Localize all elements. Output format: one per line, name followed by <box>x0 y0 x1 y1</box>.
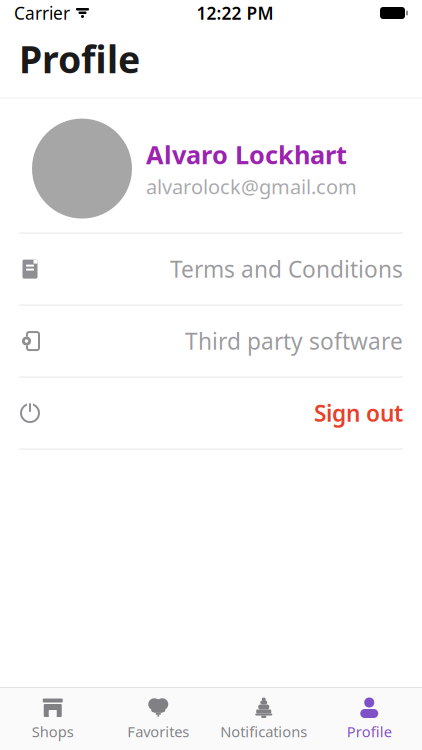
button[interactable]: Third party software <box>0 306 422 378</box>
staticText: alvarolock@gmail.com <box>146 173 357 200</box>
staticText: Notifications <box>220 722 307 741</box>
staticText: Shops <box>32 722 74 741</box>
button[interactable]: Profile <box>316 688 422 750</box>
button[interactable]: Shops <box>0 688 105 750</box>
staticText: Sign out <box>314 398 403 428</box>
staticText: Terms and Conditions <box>170 254 403 284</box>
staticText: Profile <box>19 34 140 84</box>
button[interactable]: Favorites <box>105 688 211 750</box>
staticText: Profile <box>347 722 392 741</box>
button[interactable]: Terms and Conditions <box>0 234 422 306</box>
staticText: Third party software <box>185 326 403 356</box>
staticText: Favorites <box>127 722 189 741</box>
staticText: Alvaro Lockhart <box>146 137 347 171</box>
staticText: Carrier <box>14 1 70 24</box>
staticText: 12:22 PM <box>196 1 273 24</box>
button[interactable]: Notifications <box>211 688 316 750</box>
button[interactable]: Sign out <box>0 378 422 450</box>
